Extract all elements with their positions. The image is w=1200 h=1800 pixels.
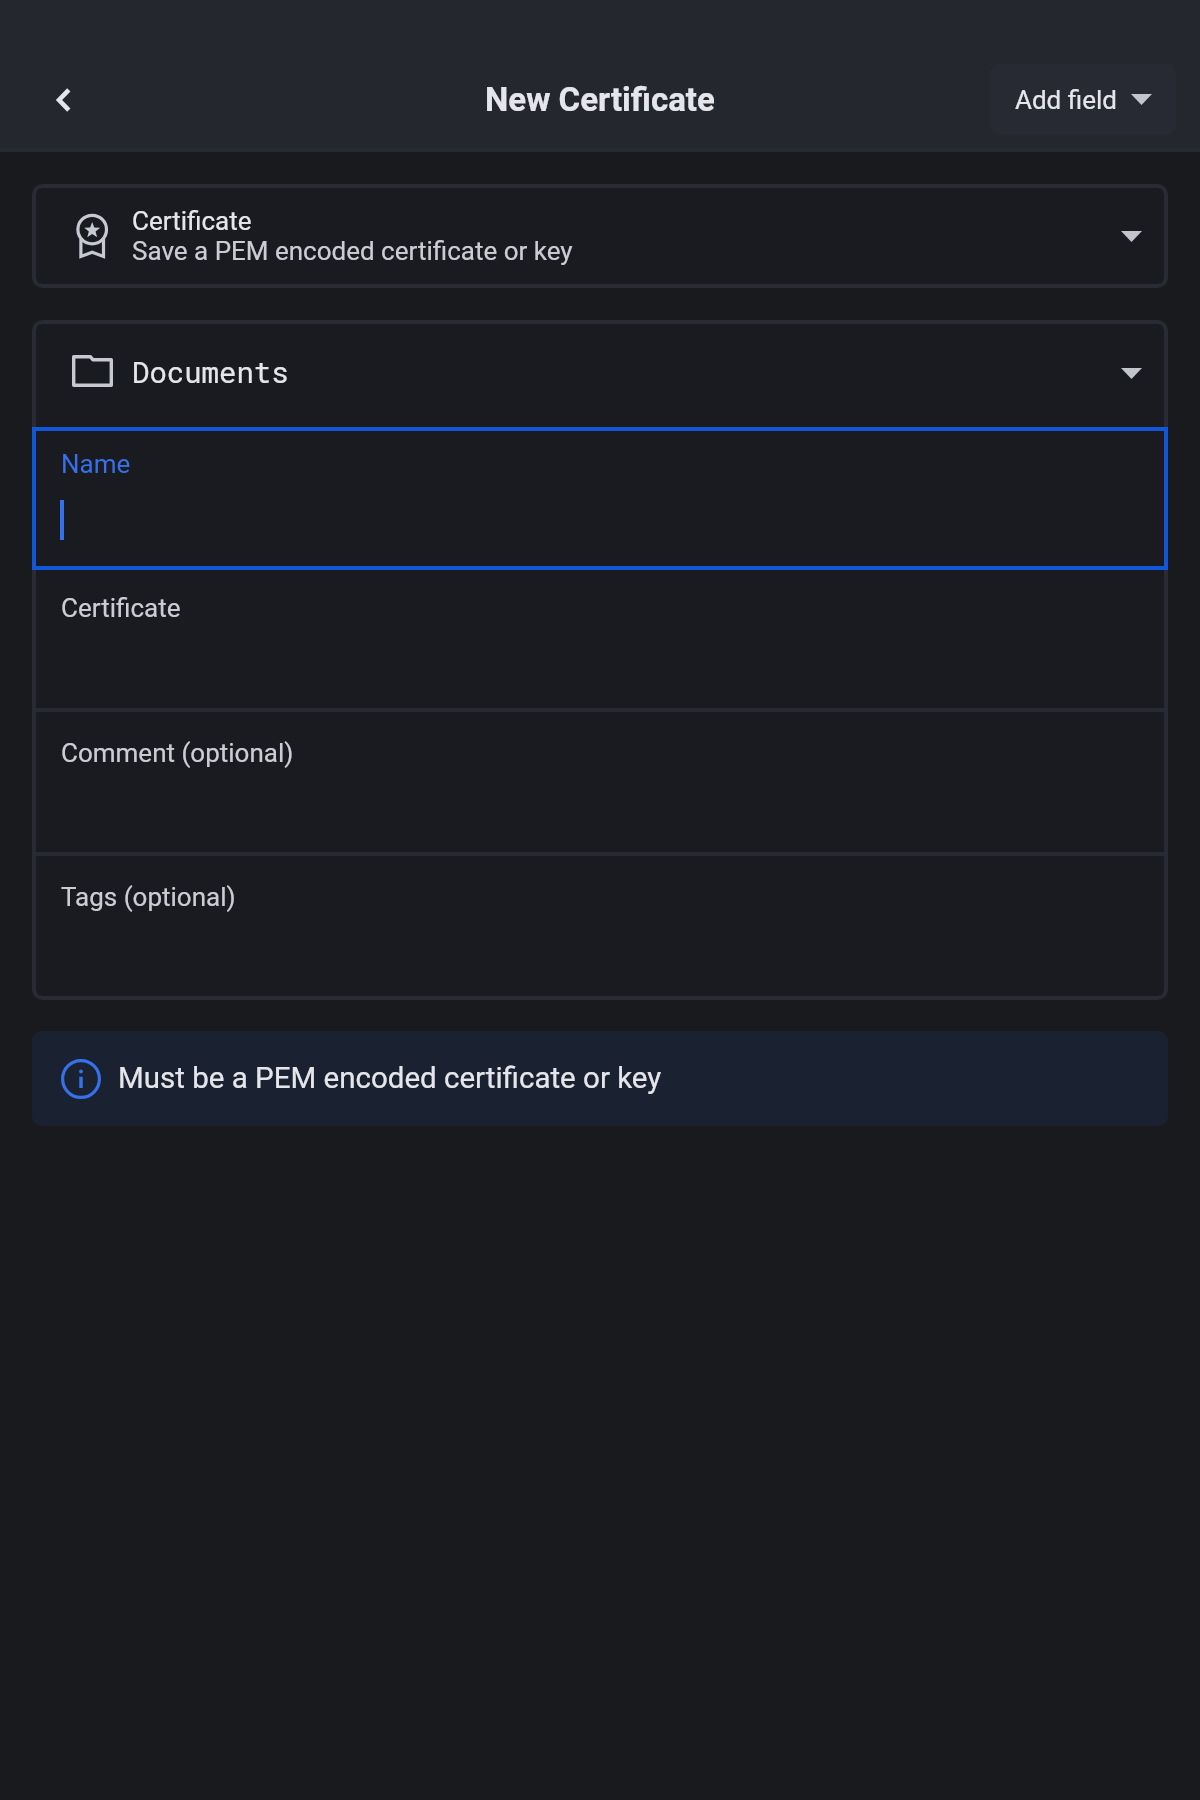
staticText: Certificate [61,593,181,623]
staticText: Documents [132,353,289,391]
button[interactable]: Tags (optional) [32,856,1168,1000]
button[interactable]: Certificate [32,570,1168,708]
staticText: Save a PEM encoded certificate or key [132,236,573,266]
staticText: Tags (optional) [61,882,236,912]
staticText: Must be a PEM encoded certificate or key [118,1061,662,1096]
button[interactable]: Comment (optional) [32,712,1168,852]
button[interactable]: Documents [32,320,1168,427]
button[interactable]: Back [27,64,99,136]
staticText: Add field [1015,85,1117,115]
button[interactable]: Add field [990,64,1176,135]
staticText: Name [61,449,131,479]
button[interactable]: Must be a PEM encoded certificate or key [32,1031,1168,1126]
button[interactable]: Name [32,427,1168,570]
staticText: Certificate [132,206,252,236]
staticText: New Certificate [485,80,715,119]
staticText: Comment (optional) [61,738,294,768]
button[interactable]: Certificate [32,184,1168,288]
